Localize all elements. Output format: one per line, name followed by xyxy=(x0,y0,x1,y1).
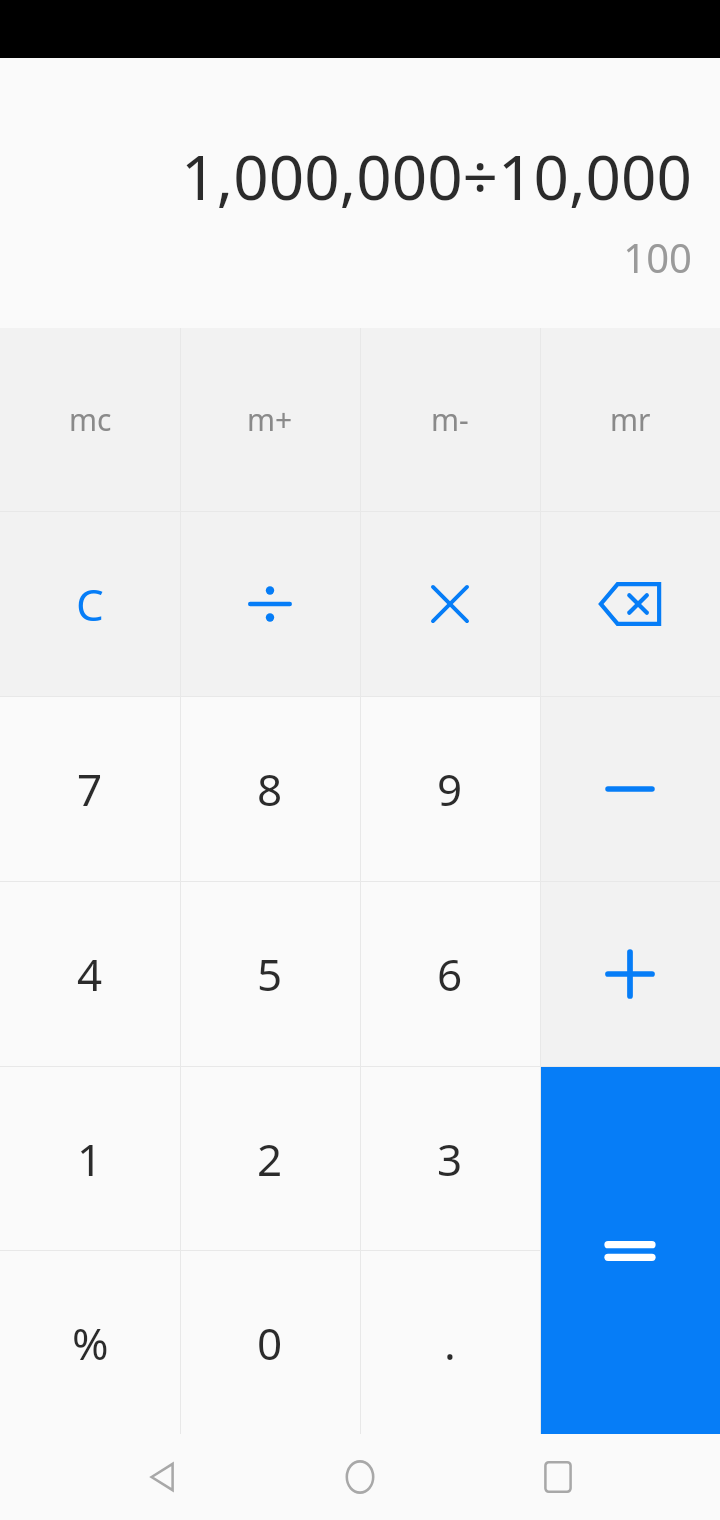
button[interactable]: 6 xyxy=(360,882,540,1066)
staticText: m- xyxy=(431,399,469,440)
button[interactable]: Minus xyxy=(540,697,720,881)
button[interactable]: Backspace xyxy=(540,512,720,696)
button[interactable]: 4 xyxy=(0,882,180,1066)
button[interactable]: mr xyxy=(540,328,720,511)
staticText: . xyxy=(444,1313,456,1373)
button[interactable]: 9 xyxy=(360,697,540,881)
button[interactable]: mc xyxy=(0,328,180,511)
staticText: 1,000,000÷10,000 xyxy=(181,134,692,218)
button[interactable]: Equals xyxy=(540,1067,720,1434)
staticText: C xyxy=(76,574,104,634)
button[interactable]: 3 xyxy=(360,1067,540,1250)
button[interactable]: Plus xyxy=(540,882,720,1066)
staticText: mr xyxy=(610,399,651,440)
staticText: 1 xyxy=(77,1129,103,1189)
button[interactable]: 7 xyxy=(0,697,180,881)
button[interactable]: Divide xyxy=(180,512,360,696)
button[interactable]: % xyxy=(0,1251,180,1434)
staticText: 5 xyxy=(257,944,283,1004)
button[interactable]: . xyxy=(360,1251,540,1434)
staticText: m+ xyxy=(247,399,293,440)
staticText: 3 xyxy=(437,1129,463,1189)
button[interactable]: Recent apps xyxy=(523,1442,593,1512)
staticText: 8 xyxy=(257,759,283,819)
staticText: mc xyxy=(69,399,112,440)
button[interactable]: 5 xyxy=(180,882,360,1066)
staticText: 6 xyxy=(437,944,463,1004)
button[interactable]: 8 xyxy=(180,697,360,881)
staticText: 2 xyxy=(257,1129,283,1189)
button[interactable]: m- xyxy=(360,328,540,511)
staticText: % xyxy=(72,1313,109,1373)
staticText: 7 xyxy=(77,759,103,819)
button[interactable]: Back xyxy=(128,1442,198,1512)
staticText: 0 xyxy=(257,1313,283,1373)
staticText: 4 xyxy=(77,944,103,1004)
staticText: 100 xyxy=(623,230,692,284)
button[interactable]: Clear xyxy=(0,512,180,696)
button[interactable]: 1 xyxy=(0,1067,180,1250)
button[interactable]: Multiply xyxy=(360,512,540,696)
button[interactable]: 0 xyxy=(180,1251,360,1434)
button[interactable]: 2 xyxy=(180,1067,360,1250)
staticText: 9 xyxy=(437,759,463,819)
button[interactable]: m+ xyxy=(180,328,360,511)
button[interactable]: Home xyxy=(325,1442,395,1512)
